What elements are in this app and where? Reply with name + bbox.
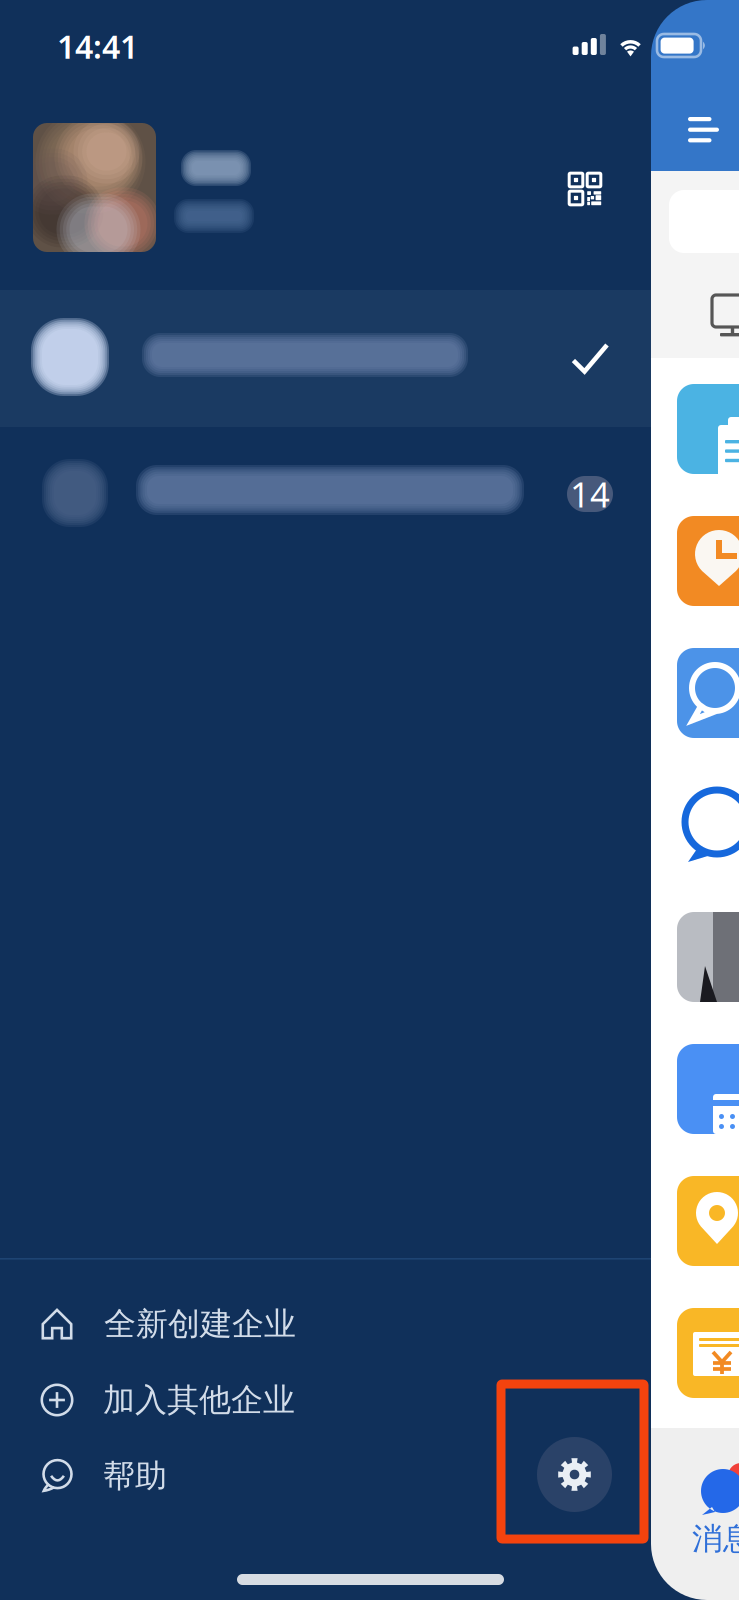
staticText: 加入其他企业 (103, 1380, 295, 1420)
button[interactable]: 帮助 (0, 1438, 651, 1514)
button[interactable]: Settings (537, 1437, 612, 1512)
staticText: 全新创建企业 (104, 1304, 296, 1344)
staticText: 帮助 (103, 1456, 167, 1496)
staticText: 消息 (692, 1520, 739, 1558)
button[interactable] (0, 290, 651, 427)
staticText: 14 (570, 471, 610, 517)
staticText: 14:41 (57, 25, 138, 67)
button[interactable]: Scan QR code (537, 141, 615, 219)
button[interactable]: 全新创建企业 (0, 1286, 651, 1362)
button[interactable]: 加入其他企业 (0, 1362, 651, 1438)
button[interactable]: 14 (0, 427, 651, 564)
